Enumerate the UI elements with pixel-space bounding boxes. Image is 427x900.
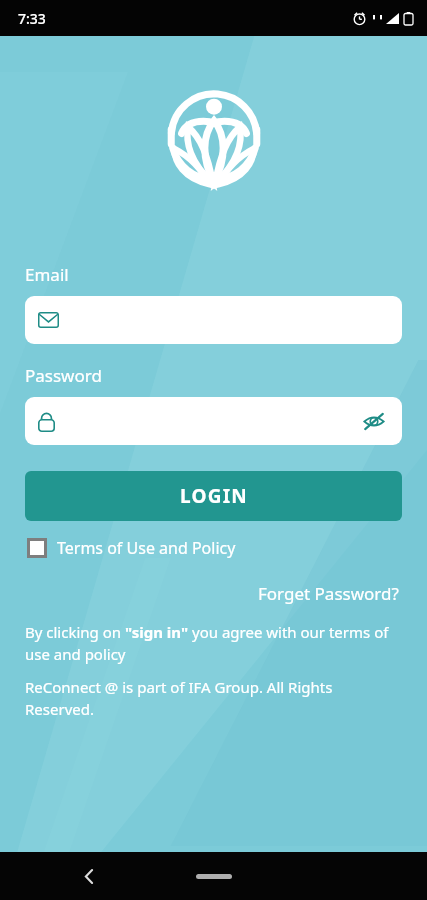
other: Email bbox=[38, 312, 59, 328]
staticText: 7:33 bbox=[18, 9, 46, 28]
staticText: Password bbox=[25, 364, 102, 387]
button[interactable]: Show password bbox=[359, 406, 389, 436]
staticText: LOGIN bbox=[180, 483, 248, 509]
button[interactable]: Password bbox=[25, 397, 402, 445]
staticText: Forget Password? bbox=[258, 582, 399, 605]
button[interactable]: Back bbox=[74, 861, 104, 891]
other: ReConnect logo bbox=[167, 88, 261, 195]
button[interactable]: LOGIN bbox=[25, 471, 402, 521]
staticText: By clicking on "sign in" you agree with … bbox=[25, 622, 402, 665]
button[interactable]: Email bbox=[25, 296, 402, 344]
other: Password bbox=[38, 411, 55, 432]
staticText: ReConnect @ is part of IFA Group. All Ri… bbox=[25, 677, 402, 720]
button[interactable]: Home bbox=[196, 874, 232, 879]
staticText: Terms of Use and Policy bbox=[57, 537, 236, 559]
button[interactable]: Forget Password? bbox=[255, 579, 402, 608]
staticText: Email bbox=[25, 263, 69, 286]
button[interactable]: Terms of Use and Policy bbox=[25, 533, 238, 563]
